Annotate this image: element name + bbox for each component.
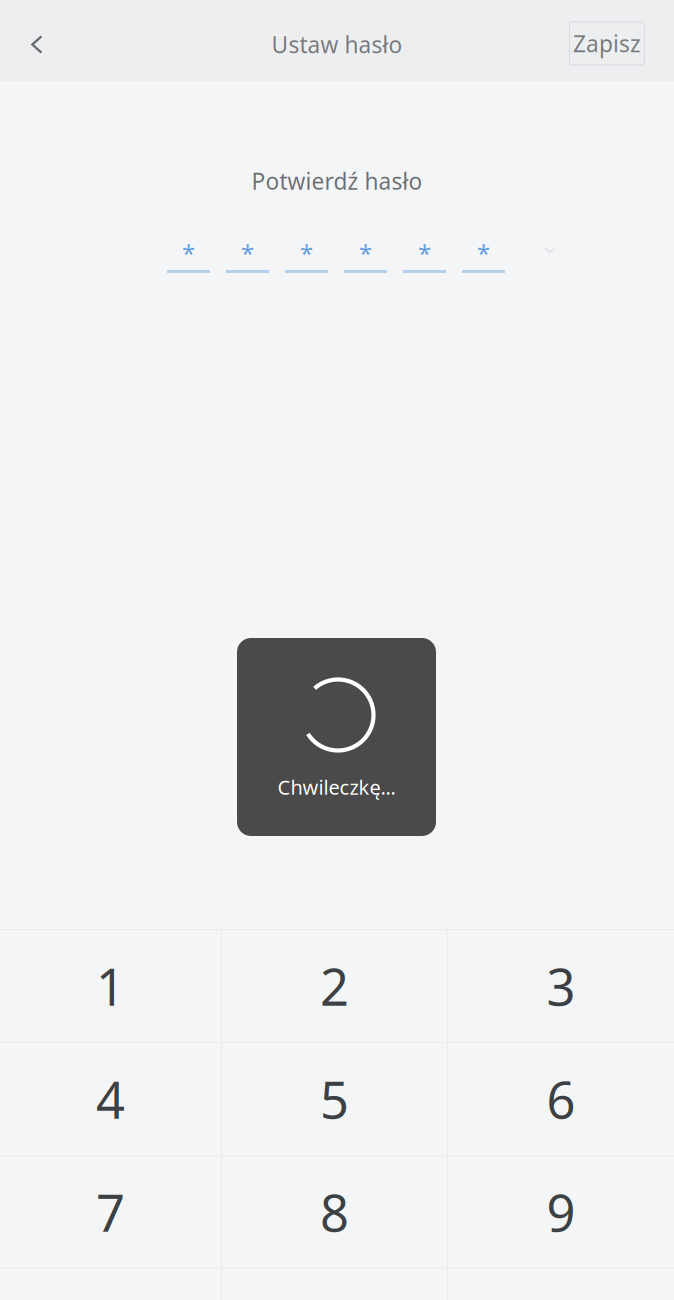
button[interactable]: Back <box>0 0 62 81</box>
button[interactable]: 1 <box>0 930 221 1042</box>
staticText: * <box>241 237 254 269</box>
staticText: Potwierdź hasło <box>251 166 422 196</box>
staticText: 9 <box>546 1178 575 1246</box>
staticText: Ustaw hasło <box>271 29 402 59</box>
button[interactable]: Password field <box>167 240 504 273</box>
staticText: 5 <box>320 1065 349 1133</box>
staticText: * <box>418 237 431 269</box>
staticText: * <box>477 237 490 269</box>
button[interactable]: Zapisz <box>569 22 644 65</box>
staticText: 6 <box>546 1065 575 1133</box>
button[interactable]: 3 <box>448 930 674 1042</box>
staticText: 1 <box>96 952 125 1020</box>
button[interactable]: 2 <box>222 930 447 1042</box>
staticText: 3 <box>546 952 575 1020</box>
staticText: * <box>359 237 372 269</box>
button[interactable]: 7 <box>0 1156 221 1268</box>
button[interactable]: 9 <box>448 1156 674 1268</box>
button[interactable]: 8 <box>222 1156 447 1268</box>
staticText: Chwileczkę... <box>277 774 395 800</box>
staticText: Zapisz <box>573 28 641 58</box>
staticText: * <box>182 237 195 269</box>
staticText: * <box>300 237 313 269</box>
staticText: 7 <box>96 1178 125 1246</box>
staticText: 2 <box>320 952 349 1020</box>
staticText: 8 <box>320 1178 349 1246</box>
button[interactable]: 5 <box>222 1043 447 1155</box>
button[interactable]: 6 <box>448 1043 674 1155</box>
button[interactable]: 4 <box>0 1043 221 1155</box>
staticText: 4 <box>96 1065 125 1133</box>
